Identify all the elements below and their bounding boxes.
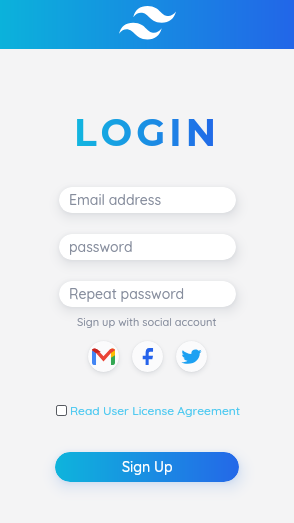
button[interactable]: password (59, 234, 236, 260)
button[interactable]: Email address (59, 187, 236, 213)
staticText: Repeat password (69, 285, 185, 303)
staticText: Email address (69, 191, 162, 209)
button[interactable]: Sign up with Twitter (176, 341, 207, 372)
staticText: Sign up with social account (77, 315, 217, 329)
button[interactable]: Sign Up (55, 452, 239, 482)
button[interactable]: Read User License Agreement (70, 403, 241, 418)
staticText: LOGIN (74, 110, 221, 156)
button[interactable]: Repeat password (59, 281, 236, 307)
button[interactable]: Sign up with Google (88, 341, 119, 372)
staticText: password (69, 238, 133, 256)
button[interactable]: Sign up with Facebook (132, 341, 163, 372)
staticText: Sign Up (122, 458, 173, 476)
button[interactable]: Agree to license (55, 404, 68, 417)
